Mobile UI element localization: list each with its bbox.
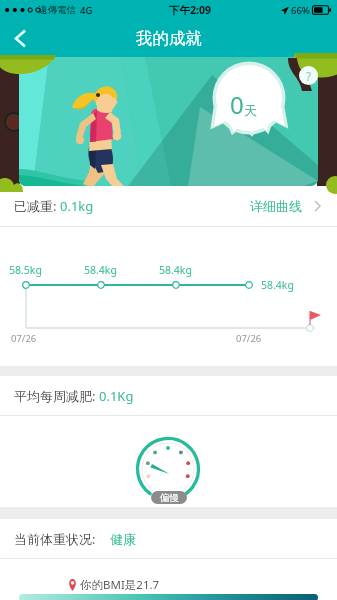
staticText: 58.4kg xyxy=(84,263,117,277)
staticText: 0.1Kg xyxy=(99,387,134,405)
staticText: 66% xyxy=(291,4,310,17)
staticText: 58.5kg xyxy=(9,263,42,277)
button[interactable]: 偏慢 xyxy=(151,491,187,504)
staticText: 健康 xyxy=(110,531,136,547)
staticText: 07/26 xyxy=(11,332,37,345)
staticText: 58.4kg xyxy=(261,278,294,292)
button[interactable]: Back xyxy=(0,20,40,57)
staticText: 4G xyxy=(80,4,93,17)
staticText: 58.4kg xyxy=(159,263,192,277)
staticText: 0 xyxy=(230,88,244,121)
button[interactable]: 已减重: xyxy=(0,186,337,226)
button[interactable]: Help xyxy=(299,66,318,85)
staticText: 07/26 xyxy=(236,332,262,345)
staticText: 平均每周减肥: xyxy=(14,387,99,405)
staticText: 0.1kg xyxy=(60,197,94,215)
staticText: 详细曲线 xyxy=(250,198,302,214)
staticText: ? xyxy=(306,68,312,84)
staticText: 下午2:09 xyxy=(169,3,211,17)
staticText: 偏慢 xyxy=(160,492,179,504)
staticText: 遠傳電信 xyxy=(38,4,76,16)
staticText: 已减重: xyxy=(14,197,60,215)
staticText: 天 xyxy=(244,102,257,118)
staticText: 当前体重状况: xyxy=(14,530,110,548)
staticText: 我的成就 xyxy=(136,28,202,49)
staticText: 你的BMI是21.7 xyxy=(80,577,160,593)
